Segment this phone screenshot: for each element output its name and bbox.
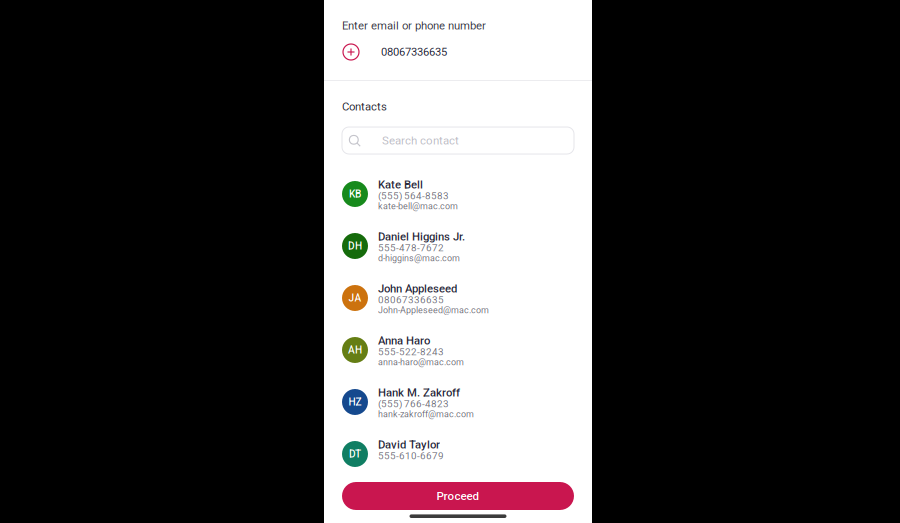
- staticText: David Taylor: [378, 438, 440, 451]
- staticText: Daniel Higgins Jr.: [378, 230, 465, 243]
- button[interactable]: DH: [342, 228, 574, 280]
- button[interactable]: AH: [342, 332, 574, 384]
- button[interactable]: JA: [342, 280, 574, 332]
- staticText: 08067336635: [381, 45, 447, 58]
- staticText: John-Appleseed@mac.com: [378, 305, 489, 315]
- staticText: Proceed: [436, 489, 479, 503]
- staticText: John Appleseed: [378, 282, 457, 295]
- staticText: 555-478-7672: [378, 242, 444, 254]
- button[interactable]: KB: [342, 176, 574, 228]
- button[interactable]: Add number: [342, 43, 360, 61]
- staticText: kate-bell@mac.com: [378, 201, 458, 211]
- staticText: HZ: [348, 396, 361, 408]
- staticText: DT: [349, 448, 361, 460]
- button[interactable]: Search contact: [342, 127, 574, 154]
- staticText: KB: [349, 188, 361, 200]
- staticText: d-higgins@mac.com: [378, 253, 460, 263]
- staticText: DH: [348, 240, 362, 252]
- staticText: (555) 766-4823: [378, 398, 449, 410]
- button[interactable]: HZ: [342, 384, 574, 436]
- staticText: 555-522-8243: [378, 346, 444, 358]
- staticText: Search contact: [382, 134, 459, 147]
- staticText: Contacts: [342, 100, 387, 113]
- staticText: AH: [348, 344, 362, 356]
- staticText: anna-haro@mac.com: [378, 357, 464, 367]
- staticText: (555) 564-8583: [378, 190, 449, 202]
- staticText: Anna Haro: [378, 334, 430, 347]
- staticText: 08067336635: [378, 294, 444, 306]
- button[interactable]: DT: [342, 436, 574, 488]
- staticText: Hank M. Zakroff: [378, 386, 460, 399]
- staticText: Enter email or phone number: [342, 19, 486, 32]
- staticText: 555-610-6679: [378, 450, 444, 462]
- button[interactable]: Proceed: [342, 482, 574, 510]
- staticText: JA: [348, 292, 361, 304]
- staticText: hank-zakroff@mac.com: [378, 409, 474, 419]
- staticText: Kate Bell: [378, 178, 423, 191]
